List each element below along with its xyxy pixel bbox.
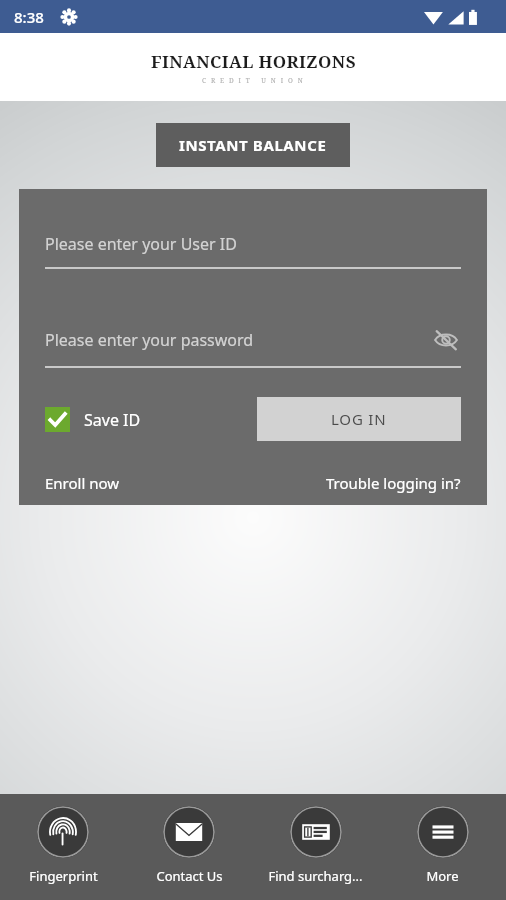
- staticText: Trouble logging in?: [326, 473, 461, 493]
- button[interactable]: Show password: [431, 325, 461, 355]
- staticText: More: [426, 867, 459, 885]
- staticText: FINANCIAL HORIZONS: [151, 50, 356, 73]
- button[interactable]: INSTANT BALANCE: [156, 123, 350, 167]
- button[interactable]: Enroll now: [45, 473, 120, 493]
- staticText: LOG IN: [331, 409, 387, 429]
- button[interactable]: Trouble logging in?: [326, 473, 461, 493]
- button[interactable]: More: [379, 794, 506, 900]
- staticText: Save ID: [84, 409, 141, 431]
- staticText: Please enter your password: [45, 329, 254, 351]
- button[interactable]: Contact Us: [126, 794, 252, 900]
- staticText: Fingerprint: [29, 867, 98, 885]
- staticText: Please enter your User ID: [45, 233, 237, 255]
- staticText: C R E D I T U N I O N: [202, 76, 305, 85]
- staticText: Contact Us: [156, 867, 223, 885]
- button[interactable]: LOG IN: [257, 397, 461, 441]
- staticText: Enroll now: [45, 473, 120, 493]
- staticText: 8:38: [14, 7, 44, 27]
- staticText: INSTANT BALANCE: [179, 135, 327, 155]
- button[interactable]: Save ID: [45, 407, 141, 432]
- button[interactable]: Find surcharg...: [252, 794, 379, 900]
- button[interactable]: Fingerprint: [0, 794, 126, 900]
- staticText: Find surcharg...: [268, 867, 363, 885]
